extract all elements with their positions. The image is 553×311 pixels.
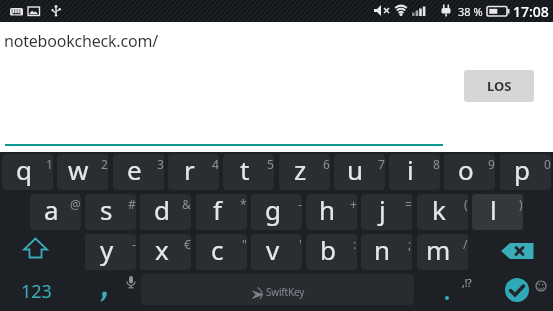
staticText: 9 xyxy=(488,156,495,172)
staticText: * xyxy=(240,196,247,212)
staticText: w xyxy=(68,154,89,187)
staticText: 38 % xyxy=(458,4,483,19)
button[interactable]: g xyxy=(251,194,302,230)
button[interactable] xyxy=(480,234,553,270)
staticText: l xyxy=(490,194,497,227)
staticText: a xyxy=(44,194,59,227)
button[interactable]: p xyxy=(500,154,551,190)
button[interactable]: j xyxy=(361,194,412,230)
staticText: q xyxy=(16,154,32,187)
staticText: & xyxy=(182,196,191,212)
staticText: j xyxy=(379,194,386,227)
button[interactable]: ,!? xyxy=(440,273,485,310)
staticText: " xyxy=(242,236,247,252)
staticText: = xyxy=(405,196,412,212)
staticText: b xyxy=(320,234,336,267)
staticText: 7 xyxy=(378,156,385,172)
button[interactable]: 123 xyxy=(0,273,80,310)
button[interactable]: n xyxy=(361,234,412,270)
staticText: o xyxy=(458,154,474,187)
staticText: 2 xyxy=(101,156,108,172)
staticText: m xyxy=(426,234,451,267)
staticText: p xyxy=(514,154,530,187)
staticText: notebookcheck.com/ xyxy=(4,30,158,52)
button[interactable]: l xyxy=(472,194,523,230)
staticText: 123 xyxy=(21,279,52,304)
button[interactable]: o xyxy=(444,154,495,190)
staticText: 17:08 xyxy=(513,2,549,21)
staticText: / xyxy=(463,236,468,252)
staticText: f xyxy=(213,194,222,227)
staticText: ' xyxy=(299,236,302,252)
staticText: - xyxy=(132,236,136,252)
button[interactable]: q xyxy=(2,154,53,190)
staticText: c xyxy=(211,234,224,267)
button[interactable]: v xyxy=(251,234,302,270)
staticText: LOS xyxy=(487,77,512,95)
staticText: u xyxy=(347,154,364,187)
staticText: v xyxy=(266,234,280,267)
button[interactable]: k xyxy=(417,194,468,230)
staticText: e xyxy=(127,154,142,187)
staticText: d xyxy=(154,194,170,227)
staticText: y xyxy=(100,234,114,267)
button[interactable]: e xyxy=(113,154,164,190)
button[interactable]: s xyxy=(85,194,136,230)
staticText: s xyxy=(100,194,113,227)
staticText: 1 xyxy=(46,156,53,172)
button[interactable]: x xyxy=(140,234,191,270)
button[interactable]: b xyxy=(306,234,357,270)
staticText: g xyxy=(265,194,281,227)
staticText: h xyxy=(319,194,336,227)
staticText: 5 xyxy=(267,156,274,172)
button[interactable]: SwiftKey xyxy=(141,274,414,305)
staticText: k xyxy=(432,194,446,227)
button[interactable]: d xyxy=(140,194,191,230)
button[interactable]: w xyxy=(57,154,108,190)
button[interactable]: m xyxy=(417,234,468,270)
button[interactable] xyxy=(0,234,80,270)
staticText: + xyxy=(350,196,357,212)
staticText: : xyxy=(353,236,357,252)
staticText: 8 xyxy=(433,156,440,172)
staticText: SwiftKey xyxy=(266,285,305,299)
button[interactable] xyxy=(505,278,529,302)
staticText: t xyxy=(240,154,250,187)
staticText: 6 xyxy=(323,156,330,172)
staticText: 4 xyxy=(212,156,219,172)
button[interactable]: c xyxy=(196,234,247,270)
staticText: ( xyxy=(464,196,468,212)
staticText: i xyxy=(407,154,414,187)
button[interactable]: LOS xyxy=(464,70,534,102)
button[interactable]: u xyxy=(334,154,385,190)
staticText: - xyxy=(298,196,302,212)
staticText: 3 xyxy=(157,156,164,172)
button[interactable]: r xyxy=(168,154,219,190)
staticText: ; xyxy=(408,236,412,252)
staticText: 0 xyxy=(544,156,551,172)
button[interactable]: t xyxy=(223,154,274,190)
staticText: n xyxy=(374,234,391,267)
staticText: r xyxy=(184,154,195,187)
staticText: x xyxy=(155,234,169,267)
staticText: ) xyxy=(519,196,523,212)
staticText: ,!? xyxy=(462,276,472,290)
button[interactable]: y xyxy=(85,234,136,270)
button[interactable]: h xyxy=(306,194,357,230)
button[interactable]: f xyxy=(196,194,247,230)
button[interactable]: i xyxy=(389,154,440,190)
button[interactable] xyxy=(83,273,141,310)
staticText: # xyxy=(128,196,136,212)
staticText: @ xyxy=(70,196,81,212)
staticText: € xyxy=(184,236,191,252)
button[interactable]: z xyxy=(279,154,330,190)
button[interactable]: a xyxy=(30,194,81,230)
staticText: z xyxy=(294,154,307,187)
